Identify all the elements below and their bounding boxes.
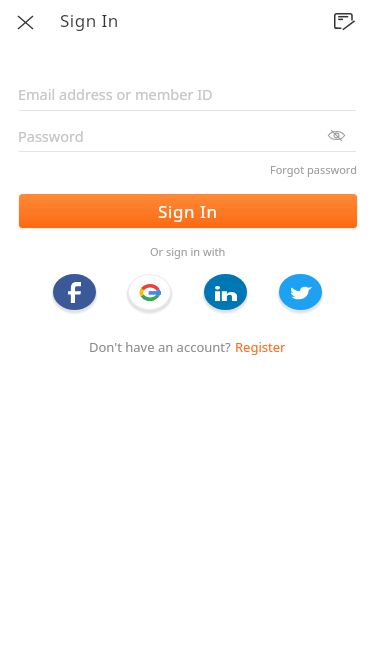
staticText: Or sign in with bbox=[150, 244, 226, 259]
staticText: Register bbox=[235, 338, 286, 356]
button[interactable]: Sign in with Google bbox=[128, 274, 171, 310]
button[interactable]: Forgot password bbox=[270, 162, 357, 177]
button[interactable]: Sign in with Facebook bbox=[53, 274, 96, 310]
button[interactable]: Close bbox=[11, 8, 39, 36]
staticText: Sign In bbox=[60, 9, 119, 32]
button[interactable]: Write a review bbox=[330, 7, 358, 35]
staticText: Email address or member ID bbox=[18, 84, 213, 104]
button[interactable]: Sign in with Twitter bbox=[279, 274, 322, 310]
button[interactable]: Sign In bbox=[19, 194, 357, 228]
staticText: Don't have an account? bbox=[89, 338, 235, 356]
button[interactable]: Register bbox=[235, 338, 286, 356]
button[interactable]: Sign in with LinkedIn bbox=[204, 274, 247, 310]
staticText: Sign In bbox=[158, 200, 218, 223]
button[interactable]: Show password bbox=[326, 125, 347, 146]
staticText: Password bbox=[18, 126, 84, 146]
staticText: Forgot password bbox=[270, 162, 357, 177]
